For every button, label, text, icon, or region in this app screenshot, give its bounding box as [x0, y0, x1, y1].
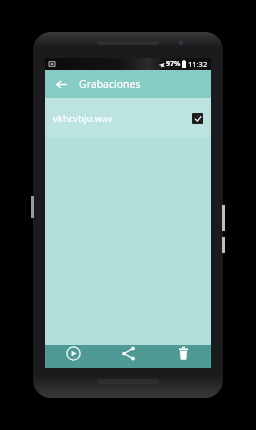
- button[interactable]: Selected: [192, 113, 203, 124]
- button[interactable]: vkhcvbju.wav: [45, 98, 211, 138]
- staticText: Grabaciones: [79, 77, 141, 91]
- staticText: vkhcvbju.wav: [53, 112, 192, 125]
- button[interactable]: Play: [45, 345, 101, 368]
- button[interactable]: Back: [52, 75, 70, 93]
- staticText: 11:32: [188, 59, 208, 69]
- button[interactable]: Delete: [156, 345, 211, 368]
- button[interactable]: Share: [101, 345, 156, 368]
- staticText: 97%: [166, 59, 181, 69]
